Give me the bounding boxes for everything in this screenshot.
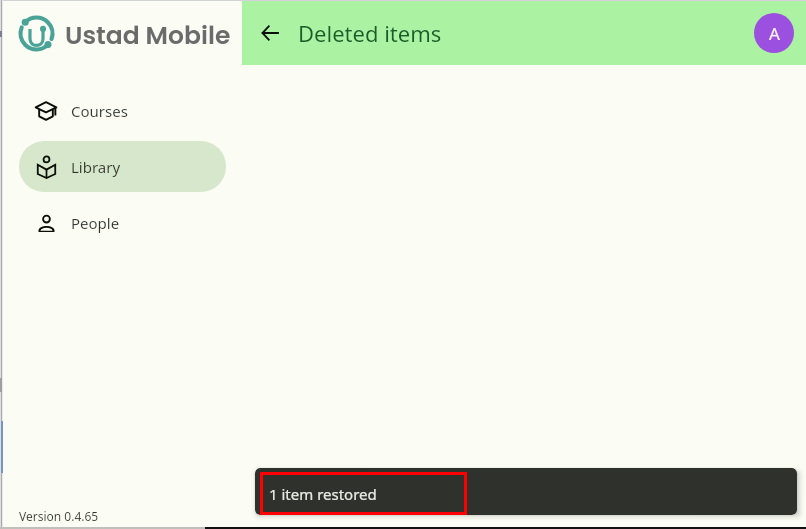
staticText: Library	[71, 157, 121, 177]
button[interactable]: 1 item restored	[263, 475, 464, 512]
button[interactable]: Courses	[19, 85, 226, 136]
staticText: Courses	[71, 101, 128, 121]
button[interactable]: Account	[754, 13, 794, 53]
staticText: Deleted items	[298, 18, 442, 48]
staticText: A	[769, 22, 780, 45]
staticText: Version 0.4.65	[19, 508, 99, 524]
staticText: People	[71, 213, 120, 233]
button[interactable]: Library	[19, 141, 226, 192]
staticText: Ustad Mobile	[65, 18, 231, 53]
button[interactable]: Back	[249, 12, 291, 54]
staticText: 1 item restored	[269, 484, 377, 504]
button[interactable]: People	[19, 197, 226, 248]
